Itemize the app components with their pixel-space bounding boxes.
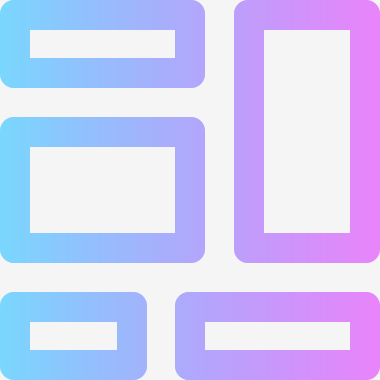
- button[interactable]: Content block: [0, 117, 205, 263]
- button[interactable]: Header block: [0, 0, 205, 88]
- button[interactable]: Footer left block: [0, 292, 147, 380]
- button[interactable]: Footer right block: [175, 292, 380, 380]
- button[interactable]: Sidebar block: [234, 0, 380, 263]
